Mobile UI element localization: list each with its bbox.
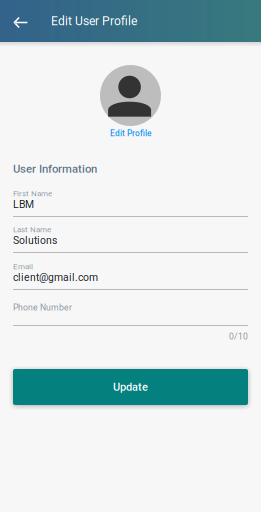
staticText: Update (113, 380, 148, 393)
button[interactable]: Update (13, 369, 248, 405)
staticText: First Name (13, 189, 52, 198)
staticText: LBM (13, 198, 34, 211)
staticText: Email (13, 262, 33, 271)
staticText: Phone Number (13, 302, 72, 313)
staticText: client@gmail.com (13, 271, 98, 284)
staticText: User Information (13, 162, 97, 176)
staticText: Last Name (13, 225, 51, 234)
button[interactable]: Edit Profile (110, 129, 151, 138)
staticText: Edit Profile (110, 129, 151, 138)
staticText: 0/10 (229, 331, 248, 342)
staticText: Edit User Profile (51, 14, 137, 28)
button[interactable]: Back (13, 0, 51, 42)
staticText: Solutions (13, 234, 57, 247)
